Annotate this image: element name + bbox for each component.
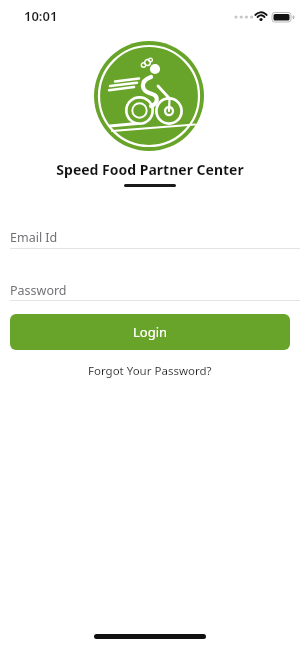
staticText: Speed Food Partner Center bbox=[0, 160, 300, 179]
staticText: Password bbox=[10, 282, 67, 299]
button[interactable]: Forgot Your Password? bbox=[0, 362, 300, 380]
staticText: Forgot Your Password? bbox=[88, 363, 212, 379]
staticText: Email Id bbox=[10, 229, 58, 246]
staticText: Login bbox=[133, 323, 168, 341]
staticText: 10:01 bbox=[24, 7, 58, 25]
button[interactable]: Email Id bbox=[0, 228, 300, 249]
button[interactable]: Password bbox=[0, 281, 300, 302]
button[interactable]: Login bbox=[10, 314, 290, 350]
